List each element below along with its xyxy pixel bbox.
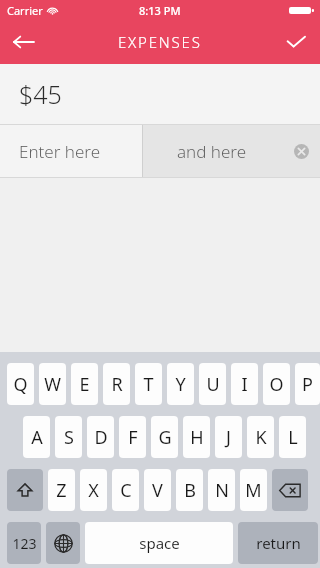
- button[interactable]: Z: [48, 469, 75, 511]
- button[interactable]: P: [295, 363, 320, 405]
- staticText: space: [139, 533, 180, 553]
- button[interactable]: J: [215, 416, 242, 458]
- staticText: D: [94, 425, 108, 450]
- button[interactable]: I: [231, 363, 258, 405]
- staticText: 8:13 PM: [139, 3, 181, 18]
- button[interactable]: V: [144, 469, 171, 511]
- button[interactable]: E: [71, 363, 98, 405]
- button[interactable]: R: [103, 363, 130, 405]
- staticText: Enter here: [19, 140, 101, 163]
- staticText: L: [288, 425, 298, 450]
- staticText: V: [152, 478, 163, 503]
- button[interactable]: O: [263, 363, 290, 405]
- button[interactable]: L: [279, 416, 306, 458]
- staticText: B: [184, 478, 196, 503]
- button[interactable]: Y: [167, 363, 194, 405]
- staticText: A: [31, 425, 43, 450]
- button[interactable]: X: [80, 469, 107, 511]
- staticText: Carrier: [7, 3, 43, 18]
- button[interactable]: Save: [272, 20, 320, 64]
- staticText: F: [128, 425, 138, 450]
- staticText: X: [88, 478, 99, 503]
- button[interactable]: N: [208, 469, 235, 511]
- button[interactable]: Enter here: [0, 125, 142, 177]
- button[interactable]: F: [119, 416, 146, 458]
- button[interactable]: B: [176, 469, 203, 511]
- button[interactable]: Shift: [7, 469, 43, 511]
- button[interactable]: 123: [7, 522, 41, 564]
- staticText: O: [269, 372, 284, 397]
- button[interactable]: S: [55, 416, 82, 458]
- staticText: C: [120, 478, 132, 503]
- button[interactable]: K: [247, 416, 274, 458]
- staticText: Y: [175, 372, 186, 397]
- button[interactable]: U: [199, 363, 226, 405]
- staticText: G: [158, 425, 172, 450]
- staticText: EXPENSES: [118, 32, 202, 52]
- button[interactable]: H: [183, 416, 210, 458]
- button[interactable]: A: [23, 416, 50, 458]
- staticText: H: [190, 425, 204, 450]
- staticText: I: [241, 372, 248, 397]
- button[interactable]: Backspace: [272, 469, 308, 511]
- staticText: 123: [12, 534, 37, 553]
- staticText: P: [302, 372, 313, 397]
- button[interactable]: G: [151, 416, 178, 458]
- staticText: Q: [13, 372, 28, 397]
- button[interactable]: return: [238, 522, 318, 564]
- staticText: T: [143, 372, 154, 397]
- button[interactable]: C: [112, 469, 139, 511]
- staticText: $45: [19, 77, 62, 111]
- staticText: U: [206, 372, 220, 397]
- staticText: M: [245, 478, 262, 503]
- staticText: Z: [56, 478, 67, 503]
- staticText: J: [226, 425, 231, 450]
- button[interactable]: D: [87, 416, 114, 458]
- staticText: K: [255, 425, 267, 450]
- button[interactable]: space: [85, 522, 233, 564]
- staticText: S: [64, 425, 74, 450]
- button[interactable]: Switch keyboard: [46, 522, 80, 564]
- button[interactable]: Q: [7, 363, 34, 405]
- button[interactable]: and here: [143, 125, 320, 177]
- staticText: and here: [177, 140, 247, 163]
- button[interactable]: T: [135, 363, 162, 405]
- staticText: R: [111, 372, 123, 397]
- button[interactable]: Back: [0, 20, 48, 64]
- button[interactable]: Clear text: [288, 138, 314, 164]
- staticText: E: [79, 372, 90, 397]
- button[interactable]: M: [240, 469, 267, 511]
- staticText: W: [44, 372, 61, 397]
- staticText: return: [256, 533, 301, 553]
- staticText: N: [215, 478, 229, 503]
- button[interactable]: $45: [0, 64, 320, 124]
- button[interactable]: W: [39, 363, 66, 405]
